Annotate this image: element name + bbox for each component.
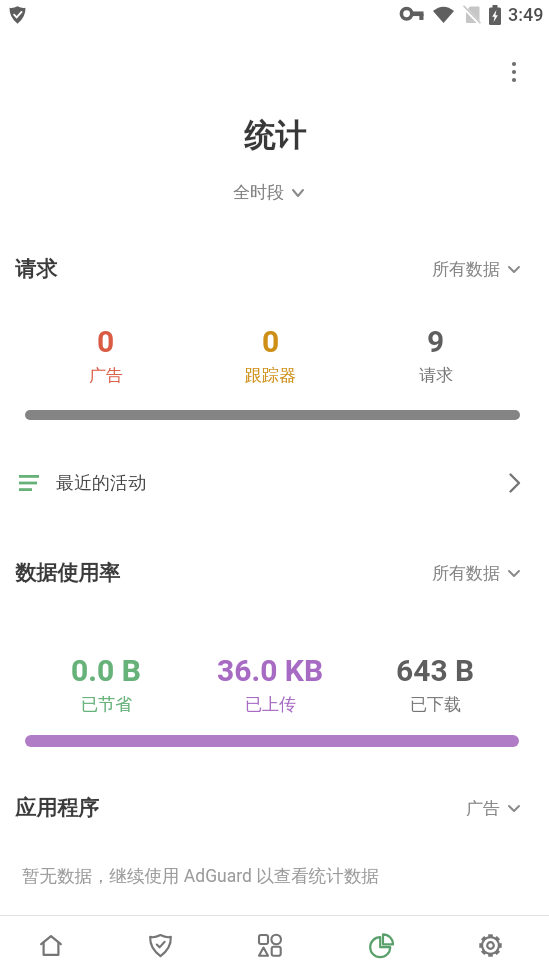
staticText: 全时段 xyxy=(233,182,284,203)
staticText: 应用程序 xyxy=(15,795,99,821)
staticText: 数据使用率 xyxy=(15,560,120,586)
button[interactable]: 全时段 xyxy=(233,182,304,203)
button[interactable]: 所有数据 xyxy=(432,563,520,584)
button[interactable] xyxy=(0,916,105,975)
staticText: 0 xyxy=(97,324,115,359)
staticText: 已上传 xyxy=(245,694,296,715)
staticText: 跟踪器 xyxy=(245,365,296,386)
staticText: 所有数据 xyxy=(432,563,500,584)
staticText: 已节省 xyxy=(81,694,132,715)
staticText: 广告 xyxy=(89,365,123,386)
staticText: 3:49 xyxy=(508,4,544,25)
button[interactable] xyxy=(498,55,530,89)
staticText: 统计 xyxy=(244,116,306,155)
staticText: 最近的活动 xyxy=(56,472,146,495)
staticText: 请求 xyxy=(15,256,57,282)
button[interactable]: 所有数据 xyxy=(432,259,520,280)
button[interactable] xyxy=(325,916,435,975)
button[interactable] xyxy=(215,916,325,975)
staticText: 所有数据 xyxy=(432,259,500,280)
button[interactable] xyxy=(435,916,545,975)
staticText: 9 xyxy=(427,324,445,359)
staticText: 暂无数据，继续使用 AdGuard 以查看统计数据 xyxy=(22,865,379,887)
staticText: 广告 xyxy=(466,798,500,819)
staticText: 已下载 xyxy=(410,694,461,715)
staticText: 请求 xyxy=(419,365,453,386)
staticText: 0 xyxy=(262,324,280,359)
button[interactable]: 广告 xyxy=(466,798,520,819)
staticText: 0.0 B xyxy=(71,653,141,688)
staticText: 36.0 KB xyxy=(217,653,324,688)
button[interactable]: 最近的活动 xyxy=(0,458,549,508)
button[interactable] xyxy=(105,916,215,975)
staticText: 643 B xyxy=(396,653,475,688)
